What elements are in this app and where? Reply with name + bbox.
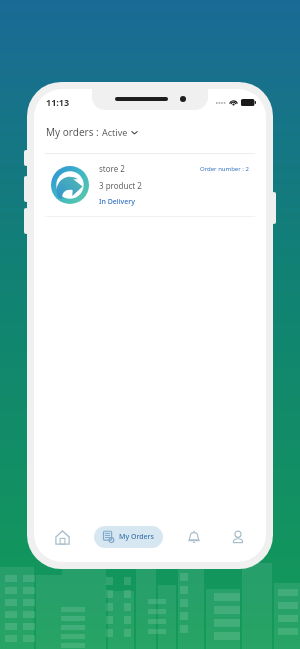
staticText: Active xyxy=(102,126,128,138)
staticText: Order number : 2 xyxy=(200,165,249,173)
staticText: 3 product 2 xyxy=(99,180,142,191)
button[interactable]: store 2 xyxy=(43,153,257,217)
button[interactable]: My Orders xyxy=(94,526,163,548)
button[interactable]: Home xyxy=(49,524,75,550)
staticText: 11:13 xyxy=(46,96,70,108)
staticText: My Orders xyxy=(119,532,154,542)
button[interactable]: Profile xyxy=(225,524,251,550)
button[interactable]: Notifications xyxy=(181,524,207,550)
staticText: My orders : xyxy=(46,125,102,139)
staticText: store 2 xyxy=(99,163,125,174)
button[interactable]: My orders : xyxy=(46,125,266,139)
staticText: In Delivery xyxy=(99,197,135,207)
